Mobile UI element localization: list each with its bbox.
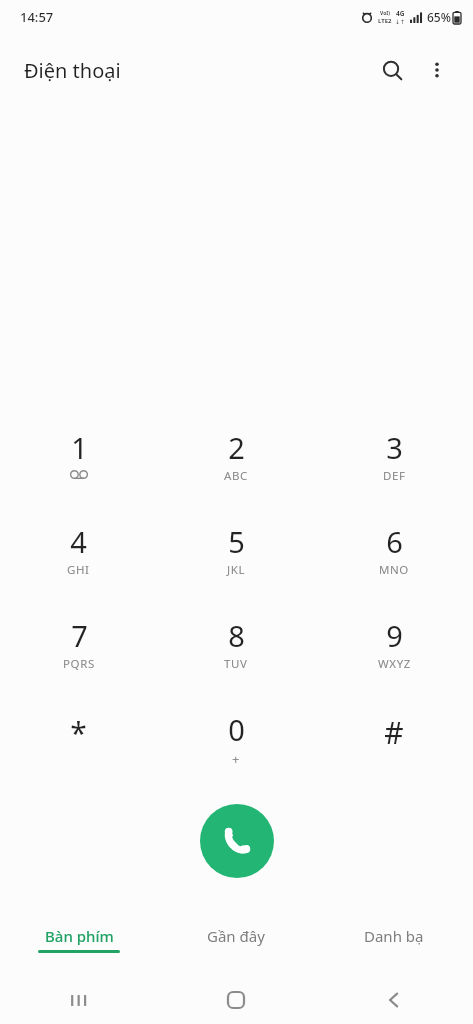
button[interactable]: Back	[315, 976, 473, 1024]
staticText: TUV	[224, 656, 248, 672]
staticText: DEF	[383, 468, 406, 484]
staticText: JKL	[227, 562, 246, 578]
staticText: 4	[70, 522, 87, 561]
staticText: VoI)	[380, 10, 390, 17]
button[interactable]: 5	[157, 512, 315, 606]
staticText: MNO	[379, 562, 409, 578]
staticText: 65%	[427, 9, 451, 25]
staticText: Điện thoại	[24, 57, 121, 84]
staticText: 2	[228, 428, 245, 467]
button[interactable]: 3	[315, 418, 473, 512]
button[interactable]: Call	[200, 804, 274, 878]
staticText: Danh bạ	[364, 926, 424, 946]
button[interactable]: Bàn phím	[0, 906, 157, 962]
staticText: *	[70, 712, 87, 753]
staticText: GHI	[67, 562, 90, 578]
button[interactable]: 7	[0, 606, 157, 700]
button[interactable]: More options	[415, 48, 459, 92]
staticText: 7	[71, 616, 88, 655]
staticText: 8	[228, 616, 245, 655]
button[interactable]: 1	[0, 418, 157, 512]
staticText: Bàn phím	[45, 926, 114, 946]
staticText: PQRS	[63, 656, 95, 672]
button[interactable]: Home	[157, 976, 315, 1024]
staticText: ↓↑	[395, 18, 406, 25]
staticText: 4G	[396, 9, 405, 18]
button[interactable]: 4	[0, 512, 157, 606]
staticText: +	[232, 750, 241, 768]
button[interactable]: 6	[315, 512, 473, 606]
button[interactable]: Danh bạ	[315, 906, 473, 962]
button[interactable]: Recents	[0, 976, 157, 1024]
staticText: ABC	[224, 468, 248, 484]
button[interactable]: #	[315, 700, 473, 794]
staticText: 0	[228, 710, 245, 749]
staticText: 6	[386, 522, 403, 561]
staticText: 9	[386, 616, 403, 655]
staticText: #	[384, 712, 404, 753]
button[interactable]: 2	[157, 418, 315, 512]
button[interactable]: 9	[315, 606, 473, 700]
staticText: LTE2	[378, 17, 392, 25]
button[interactable]: 0	[157, 700, 315, 794]
staticText: 3	[386, 428, 403, 467]
staticText: 1	[71, 428, 88, 467]
staticText: Gần đây	[207, 926, 265, 946]
staticText: 14:57	[20, 8, 54, 26]
staticText: WXYZ	[378, 656, 411, 672]
button[interactable]: 8	[157, 606, 315, 700]
button[interactable]: Gần đây	[157, 906, 315, 962]
button[interactable]: *	[0, 700, 157, 794]
button[interactable]: Search	[369, 47, 415, 93]
staticText: 5	[228, 522, 245, 561]
